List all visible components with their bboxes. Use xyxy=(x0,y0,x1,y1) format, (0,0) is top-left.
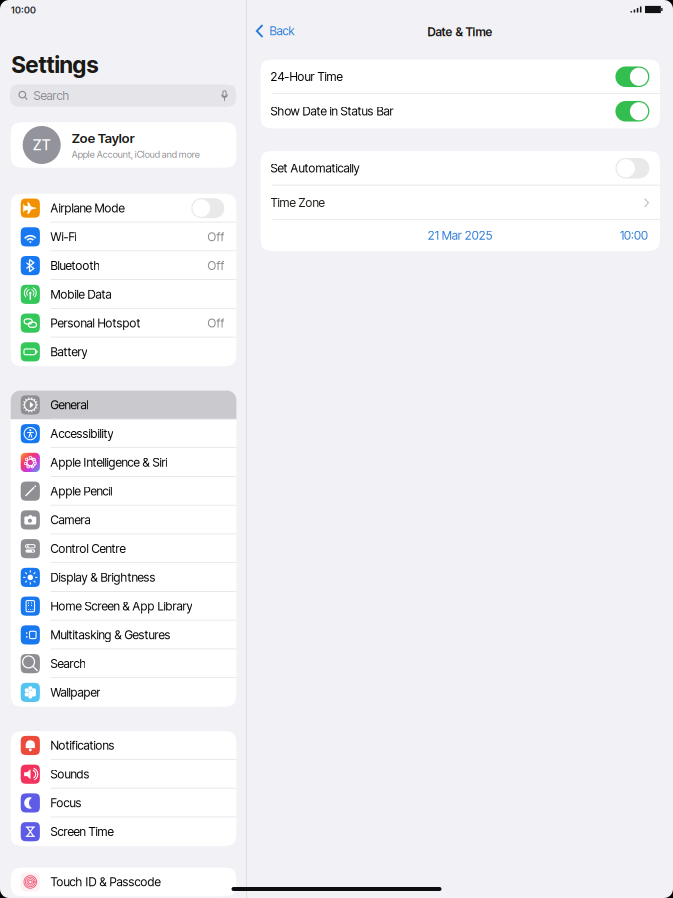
button[interactable]: 10:00 xyxy=(614,224,654,247)
staticText: Control Centre xyxy=(50,541,125,556)
button[interactable]: Camera xyxy=(11,505,236,534)
button[interactable]: Apple Intelligence & Siri xyxy=(11,448,236,477)
button[interactable]: Airplane Mode xyxy=(11,194,236,222)
staticText: Home Screen & App Library xyxy=(50,599,192,613)
staticText: Camera xyxy=(50,513,90,527)
staticText: Display & Brightness xyxy=(50,570,155,585)
staticText: Accessibility xyxy=(50,426,113,441)
button[interactable]: Display & Brightness xyxy=(11,563,236,592)
button[interactable]: Apple Pencil xyxy=(11,477,236,506)
button[interactable]: Mobile Data xyxy=(11,280,236,309)
button[interactable]: Control Centre xyxy=(11,534,236,563)
button[interactable]: Touch ID & Passcode xyxy=(11,868,236,896)
staticText: Focus xyxy=(50,796,81,810)
button[interactable]: 21 Mar 2025 xyxy=(422,224,499,247)
staticText: Apple Account, iCloud and more xyxy=(72,149,200,160)
button[interactable]: Bluetooth xyxy=(11,251,236,280)
staticText: Personal Hotspot xyxy=(50,316,140,330)
staticText: Wallpaper xyxy=(50,685,100,700)
staticText: Search xyxy=(50,656,86,671)
staticText: Airplane Mode xyxy=(50,201,124,215)
staticText: Date & Time xyxy=(427,25,492,39)
staticText: Search xyxy=(33,88,69,103)
button[interactable]: Personal Hotspot xyxy=(11,309,236,337)
button[interactable]: Wi-Fi xyxy=(11,222,236,251)
button[interactable]: Home Screen & App Library xyxy=(11,592,236,621)
staticText: 24-Hour Time xyxy=(270,69,342,84)
button[interactable]: Set Automatically xyxy=(260,151,660,185)
staticText: ZT xyxy=(33,136,51,154)
staticText: 21 Mar 2025 xyxy=(428,228,493,243)
staticText: Wi-Fi xyxy=(50,230,76,244)
staticText: Show Date in Status Bar xyxy=(270,104,393,118)
button[interactable]: General xyxy=(11,390,236,419)
button[interactable]: Notifications xyxy=(11,731,236,760)
staticText: Zoe Taylor xyxy=(72,130,135,146)
staticText: Notifications xyxy=(50,738,114,753)
staticText: 10:00 xyxy=(620,228,648,243)
button[interactable]: 24-Hour Time xyxy=(260,59,660,94)
button[interactable]: Wallpaper xyxy=(11,678,236,707)
staticText: Sounds xyxy=(50,767,89,781)
staticText: Off xyxy=(207,230,224,244)
staticText: Multitasking & Gestures xyxy=(50,628,170,642)
staticText: Screen Time xyxy=(50,824,113,839)
button[interactable]: Multitasking & Gestures xyxy=(11,620,236,649)
staticText: Touch ID & Passcode xyxy=(50,875,160,889)
staticText: Bluetooth xyxy=(50,258,100,273)
button[interactable]: Show Date in Status Bar xyxy=(260,94,660,128)
button[interactable]: Sounds xyxy=(11,760,236,789)
staticText: Mobile Data xyxy=(50,287,111,302)
staticText: Apple Intelligence & Siri xyxy=(50,455,167,470)
staticText: Settings xyxy=(11,51,98,78)
button[interactable]: Time Zone xyxy=(260,185,660,220)
button[interactable]: Focus xyxy=(11,789,236,817)
button[interactable]: Search xyxy=(11,649,236,678)
staticText: Apple Pencil xyxy=(50,484,112,498)
staticText: Off xyxy=(207,258,224,273)
staticText: Time Zone xyxy=(270,195,324,210)
staticText: Set Automatically xyxy=(270,161,359,175)
button[interactable]: Screen Time xyxy=(11,817,236,846)
button[interactable]: ZT xyxy=(11,122,236,168)
button[interactable]: Back xyxy=(247,20,302,42)
staticText: Back xyxy=(269,24,294,38)
button[interactable]: Battery xyxy=(11,337,236,366)
staticText: Battery xyxy=(50,345,87,359)
staticText: General xyxy=(50,398,88,412)
staticText: Off xyxy=(207,316,224,330)
staticText: 10:00 xyxy=(11,4,36,16)
button[interactable]: Accessibility xyxy=(11,419,236,448)
